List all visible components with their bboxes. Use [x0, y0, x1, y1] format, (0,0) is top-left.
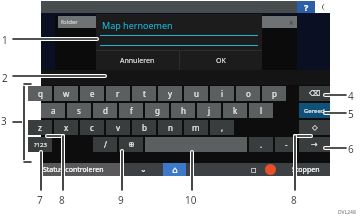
button[interactable]: a: [41, 103, 65, 118]
staticText: 7: [37, 193, 43, 207]
staticText: 6: [348, 142, 354, 156]
button[interactable]: ?123: [28, 137, 52, 152]
button[interactable]: j: [197, 103, 221, 118]
staticText: ⬦: [312, 124, 318, 132]
staticText: o: [246, 88, 251, 99]
button[interactable]: w: [54, 86, 78, 101]
staticText: Map hernoemen: [102, 19, 173, 31]
button[interactable]: /: [93, 137, 117, 152]
staticText: v: [116, 122, 121, 133]
staticText: ?123: [34, 141, 47, 149]
staticText: ×: [289, 17, 294, 28]
button[interactable]: Help: [297, 1, 315, 13]
staticText: 4: [348, 89, 354, 103]
button[interactable]: OK: [180, 51, 262, 71]
button[interactable]: r: [106, 86, 130, 101]
button[interactable]: Stop: [265, 164, 276, 175]
staticText: e: [90, 88, 95, 99]
staticText: l: [260, 105, 263, 116]
staticText: /: [104, 139, 107, 150]
staticText: 2: [2, 71, 8, 85]
staticText: h: [181, 105, 186, 116]
button[interactable]: t: [132, 86, 156, 101]
button[interactable]: Stoppen: [281, 163, 330, 176]
staticText: b: [142, 122, 147, 133]
staticText: 3: [1, 114, 7, 128]
staticText: □: [251, 166, 257, 173]
button[interactable]: d: [93, 103, 117, 118]
staticText: i: [221, 88, 224, 99]
staticText: f: [130, 105, 133, 116]
button[interactable]: m: [184, 120, 208, 135]
button[interactable]: Annuleren: [96, 51, 179, 71]
button[interactable]: v: [106, 120, 130, 135]
button[interactable]: b: [132, 120, 156, 135]
staticText: a: [51, 105, 56, 116]
button[interactable]: i: [210, 86, 234, 101]
button[interactable]: -: [275, 137, 297, 152]
staticText: u: [194, 88, 199, 99]
button[interactable]: .: [249, 137, 273, 152]
staticText: w: [63, 88, 70, 99]
button[interactable]: k: [223, 103, 247, 118]
staticText: ,: [221, 122, 224, 133]
staticText: 1: [2, 33, 8, 47]
staticText: r: [116, 88, 120, 99]
button[interactable]: ⬦: [299, 120, 330, 135]
staticText: →: [311, 140, 318, 149]
staticText: m: [192, 122, 200, 133]
button[interactable]: Sleep: [315, 1, 330, 13]
button[interactable]: [145, 137, 247, 152]
button[interactable]: c: [80, 120, 104, 135]
button[interactable]: h: [171, 103, 195, 118]
staticText: z: [38, 122, 42, 133]
staticText: ?: [304, 1, 309, 13]
staticText: t: [143, 88, 146, 99]
staticText: q: [38, 88, 43, 99]
staticText: p: [272, 88, 277, 99]
button[interactable]: z: [28, 120, 52, 135]
staticText: OK: [216, 56, 226, 66]
button[interactable]: o: [236, 86, 260, 101]
staticText: g: [155, 105, 160, 116]
staticText: -: [285, 139, 288, 150]
button[interactable]: ⊕: [119, 137, 143, 152]
staticText: c: [90, 122, 94, 133]
staticText: folder: [61, 18, 78, 26]
staticText: Status controleren: [43, 165, 104, 175]
staticText: .: [260, 139, 263, 150]
staticText: j: [208, 105, 211, 116]
staticText: ⌄: [140, 165, 147, 174]
button[interactable]: n: [158, 120, 182, 135]
button[interactable]: Gereed: [299, 103, 330, 118]
button[interactable]: ⌫: [299, 86, 330, 101]
staticText: Gereed: [304, 107, 325, 115]
staticText: y: [168, 88, 173, 99]
staticText: 8: [59, 193, 65, 207]
button[interactable]: e: [80, 86, 104, 101]
staticText: n: [168, 122, 173, 133]
button[interactable]: g: [145, 103, 169, 118]
button[interactable]: Status controleren: [41, 163, 123, 176]
staticText: s: [77, 105, 81, 116]
button[interactable]: q: [28, 86, 52, 101]
button[interactable]: s: [67, 103, 91, 118]
button[interactable]: x: [54, 120, 78, 135]
button[interactable]: f: [119, 103, 143, 118]
staticText: k: [233, 105, 238, 116]
button[interactable]: ,: [210, 120, 234, 135]
button[interactable]: y: [158, 86, 182, 101]
staticText: 5: [348, 107, 354, 121]
staticText: ⌫: [309, 89, 321, 98]
button[interactable]: Hide keyboard: [125, 163, 161, 176]
staticText: 10: [185, 193, 197, 207]
button[interactable]: u: [184, 86, 208, 101]
staticText: Annuleren: [120, 56, 155, 66]
button[interactable]: Recents: [245, 163, 263, 176]
button[interactable]: Home: [163, 163, 186, 176]
staticText: ⊕: [128, 140, 135, 149]
staticText: d: [103, 105, 108, 116]
button[interactable]: l: [249, 103, 273, 118]
button[interactable]: →: [299, 137, 330, 152]
button[interactable]: p: [262, 86, 286, 101]
